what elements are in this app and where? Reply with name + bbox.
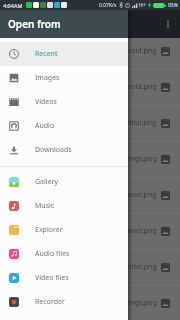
button[interactable]: center.png (0, 250, 180, 285)
staticText: miui.png (127, 118, 157, 128)
staticText: Open from (8, 17, 61, 31)
button[interactable]: Images (0, 66, 128, 90)
staticText: Downloads (35, 145, 72, 155)
staticText: center.png (122, 262, 157, 272)
button[interactable]: Music (0, 194, 128, 218)
staticText: Music (35, 201, 55, 211)
button[interactable]: android.png (0, 70, 180, 105)
button[interactable]: Downloads (0, 138, 128, 162)
button[interactable]: Recorder (0, 290, 128, 314)
button[interactable]: settings.png (0, 286, 180, 320)
button[interactable]: Recent (0, 42, 128, 66)
staticText: 4:04AM (3, 2, 23, 9)
button[interactable]: Audio files (0, 242, 128, 266)
staticText: android.png (116, 46, 157, 56)
button[interactable]: miui.png (0, 106, 180, 141)
staticText: Explorer (35, 225, 63, 235)
staticText: 0.07K/s (99, 2, 117, 9)
staticText: H+ (139, 2, 146, 9)
staticText: Gallery (35, 177, 59, 187)
staticText: browser.png (116, 226, 157, 236)
staticText: settings.png (116, 298, 157, 308)
button[interactable]: Gallery (0, 170, 128, 194)
staticText: settings.png (116, 154, 157, 164)
staticText: 0.07K/s (99, 2, 117, 9)
staticText: android.png (116, 82, 157, 92)
button[interactable]: browser.png (0, 214, 180, 249)
button[interactable]: Video files (0, 266, 128, 290)
staticText: 95% (168, 2, 178, 9)
button[interactable]: Explorer (0, 218, 128, 242)
button[interactable]: More options (162, 18, 174, 30)
button[interactable]: Videos (0, 90, 128, 114)
staticText: Audio files (35, 249, 70, 259)
button[interactable]: android.png (0, 34, 180, 69)
staticText: Videos (35, 97, 57, 107)
staticText: Images (35, 73, 60, 83)
button[interactable]: settings.png (0, 142, 180, 177)
staticText: 95% (168, 2, 178, 9)
staticText: browser.png (116, 190, 157, 200)
staticText: 4:04AM (3, 2, 23, 9)
staticText: H+ (139, 2, 146, 9)
staticText: Recent (35, 49, 58, 59)
staticText: Video files (35, 273, 69, 283)
button[interactable]: browser.png (0, 178, 180, 213)
button[interactable]: Audio (0, 114, 128, 138)
staticText: Recorder (35, 297, 65, 307)
staticText: Audio (35, 121, 55, 131)
